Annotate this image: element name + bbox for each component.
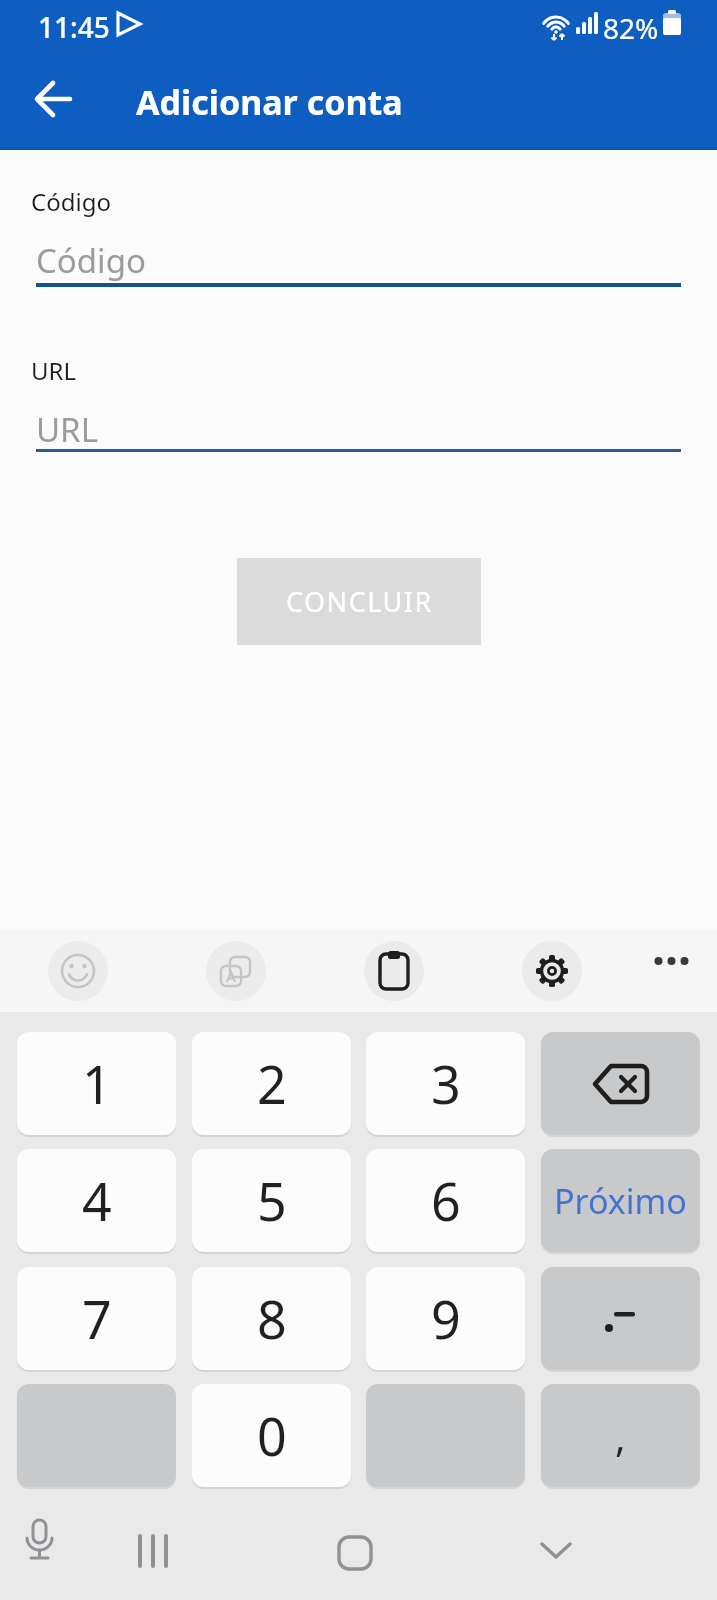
staticText: 7 bbox=[82, 1283, 112, 1354]
staticText: 82% bbox=[603, 9, 659, 47]
button[interactable] bbox=[337, 1536, 373, 1570]
staticText: 1 bbox=[82, 1048, 112, 1119]
staticText: 5 bbox=[257, 1165, 287, 1236]
staticText: 6 bbox=[431, 1165, 461, 1236]
staticText: CONCLUIR bbox=[286, 583, 433, 620]
button[interactable] bbox=[522, 941, 582, 1001]
staticText: Código bbox=[31, 185, 111, 218]
button[interactable] bbox=[645, 956, 701, 966]
button[interactable]: CONCLUIR bbox=[237, 558, 481, 645]
button[interactable]: 2 bbox=[192, 1032, 351, 1135]
staticText: 4 bbox=[82, 1165, 112, 1236]
button[interactable] bbox=[206, 941, 266, 1001]
button[interactable]: 3 bbox=[366, 1032, 525, 1135]
staticText: Adicionar conta bbox=[136, 79, 403, 125]
staticText: URL bbox=[31, 354, 77, 387]
button[interactable]: 5 bbox=[192, 1149, 351, 1252]
staticText: 9 bbox=[431, 1283, 461, 1354]
staticText: 0 bbox=[257, 1400, 287, 1471]
staticText: Próximo bbox=[554, 1178, 687, 1224]
button[interactable] bbox=[541, 1032, 700, 1135]
button[interactable]: 7 bbox=[17, 1267, 176, 1370]
staticText: 11:45 bbox=[38, 8, 110, 46]
button[interactable] bbox=[134, 1536, 178, 1568]
button[interactable]: 8 bbox=[192, 1267, 351, 1370]
button[interactable]: , bbox=[541, 1384, 700, 1487]
button[interactable]: 0 bbox=[192, 1384, 351, 1487]
staticText: 2 bbox=[257, 1048, 287, 1119]
button[interactable]: 9 bbox=[366, 1267, 525, 1370]
button[interactable]: 4 bbox=[17, 1149, 176, 1252]
staticText: URL bbox=[36, 407, 98, 452]
button[interactable] bbox=[22, 1518, 58, 1566]
staticText: 8 bbox=[257, 1283, 287, 1354]
button[interactable] bbox=[540, 1542, 574, 1562]
button[interactable] bbox=[48, 941, 108, 1001]
button[interactable]: 1 bbox=[17, 1032, 176, 1135]
button[interactable] bbox=[541, 1267, 700, 1370]
staticText: 3 bbox=[431, 1048, 461, 1119]
button[interactable]: Próximo bbox=[541, 1149, 700, 1252]
staticText: Código bbox=[36, 238, 146, 283]
staticText: , bbox=[615, 1409, 626, 1463]
button[interactable]: 6 bbox=[366, 1149, 525, 1252]
button[interactable] bbox=[364, 941, 424, 1001]
